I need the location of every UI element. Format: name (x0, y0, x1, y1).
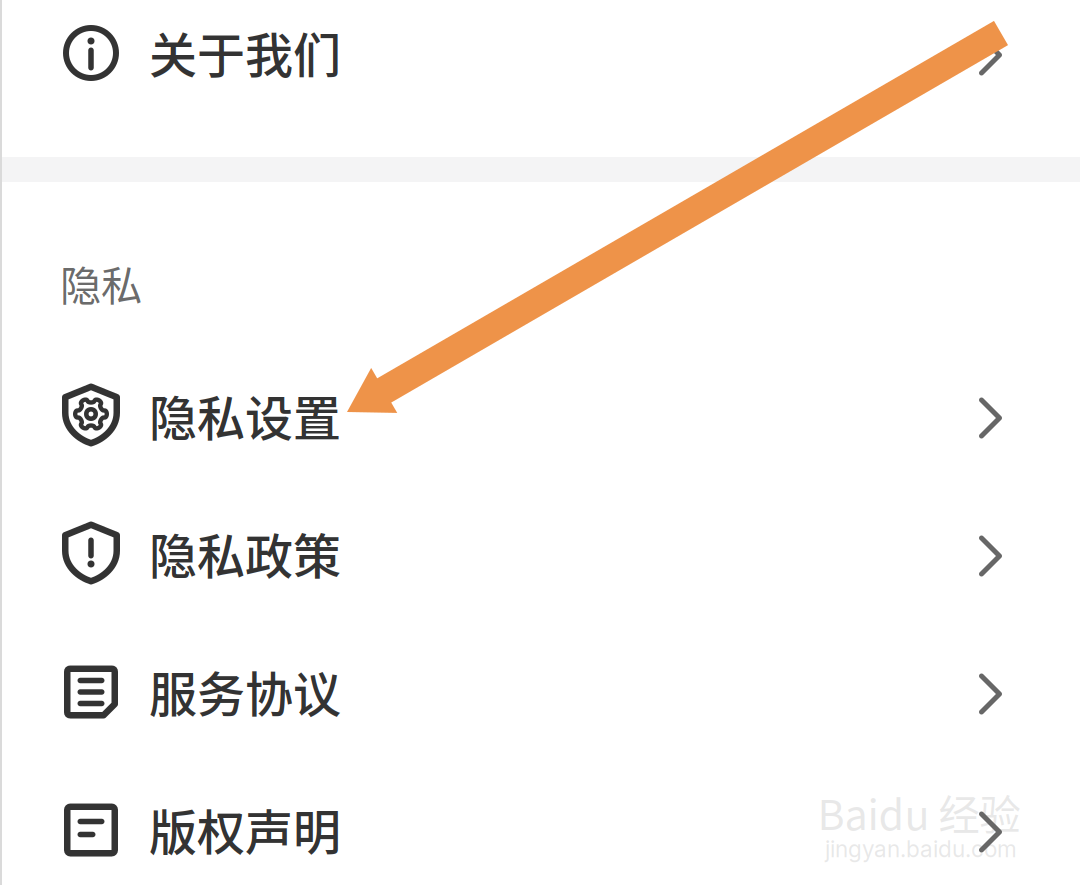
staticText: 版权声明 (149, 794, 341, 864)
staticText: 隐私 (60, 253, 142, 313)
button[interactable]: 隐私设置 (0, 349, 1080, 487)
staticText: jingyan.baidu.com (825, 835, 1017, 863)
staticText: Baidu 经验 (817, 782, 1020, 842)
staticText: 服务协议 (149, 656, 341, 726)
button[interactable]: 服务协议 (0, 625, 1080, 763)
staticText: 隐私政策 (149, 518, 341, 588)
button[interactable]: 版权声明 (0, 763, 1080, 885)
staticText: 关于我们 (149, 17, 341, 87)
staticText: 隐私设置 (149, 380, 341, 450)
button[interactable]: 隐私政策 (0, 487, 1080, 625)
button[interactable]: 关于我们 (0, 0, 1080, 124)
